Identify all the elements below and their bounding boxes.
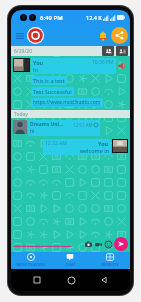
button[interactable]: Share — [111, 27, 128, 44]
staticText: 6/29/20 — [14, 48, 33, 55]
staticText: Test Successful — [33, 88, 72, 95]
staticText: https://www.mod3radio.com — [33, 99, 101, 106]
staticText: 12:51 AM — [73, 122, 93, 128]
button[interactable]: WEBSITE — [90, 252, 130, 269]
button[interactable]: Test Successful — [31, 87, 74, 96]
staticText: You — [33, 59, 44, 66]
staticText: WEBSITE — [101, 262, 119, 268]
button[interactable]: Listeners — [102, 46, 114, 56]
button[interactable]: NOW PLAYING — [11, 252, 50, 269]
staticText: hi — [33, 66, 38, 73]
staticText: hi — [30, 128, 35, 135]
staticText: Today — [14, 111, 28, 118]
staticText: 10:36 PM — [92, 59, 114, 66]
button[interactable]: Play audio — [118, 62, 126, 70]
button[interactable]: Home — [63, 272, 79, 288]
staticText: Dreams Unl... — [30, 121, 64, 128]
staticText: 12.4 K — [86, 14, 102, 21]
button[interactable]: CHAT — [50, 252, 90, 269]
button[interactable]: Back — [96, 272, 112, 288]
staticText: 6:49 PM — [40, 14, 63, 22]
button[interactable]: Send message — [114, 237, 128, 251]
staticText: welcome in — [45, 147, 109, 154]
button[interactable]: Record video — [94, 240, 103, 249]
staticText: 12:32 AM — [45, 140, 67, 147]
button[interactable]: This is a test — [31, 76, 67, 85]
button[interactable]: Shared photo — [112, 139, 128, 153]
button[interactable]: Insert emoji — [104, 240, 113, 249]
staticText: NOW PLAYING — [16, 262, 46, 268]
button[interactable]: Sender avatar — [13, 120, 27, 134]
button[interactable]: Open navigation menu — [13, 29, 27, 43]
button[interactable]: https://www.mod3radio.com — [31, 98, 103, 107]
staticText: This is a test — [33, 77, 65, 84]
button[interactable]: Take photo — [84, 240, 93, 249]
button[interactable]: 12:32 AM — [43, 139, 111, 155]
button[interactable]: Recent apps — [29, 272, 45, 288]
button[interactable]: Station logo — [27, 27, 44, 44]
button[interactable]: Dreams Unl... — [28, 120, 100, 136]
staticText: CHAT — [65, 262, 76, 268]
staticText: You — [98, 140, 109, 147]
button[interactable]: Notifications — [95, 28, 110, 43]
button[interactable]: Shared photo — [13, 58, 30, 72]
button[interactable]: You — [31, 58, 116, 74]
button[interactable]: Profile — [116, 46, 128, 56]
